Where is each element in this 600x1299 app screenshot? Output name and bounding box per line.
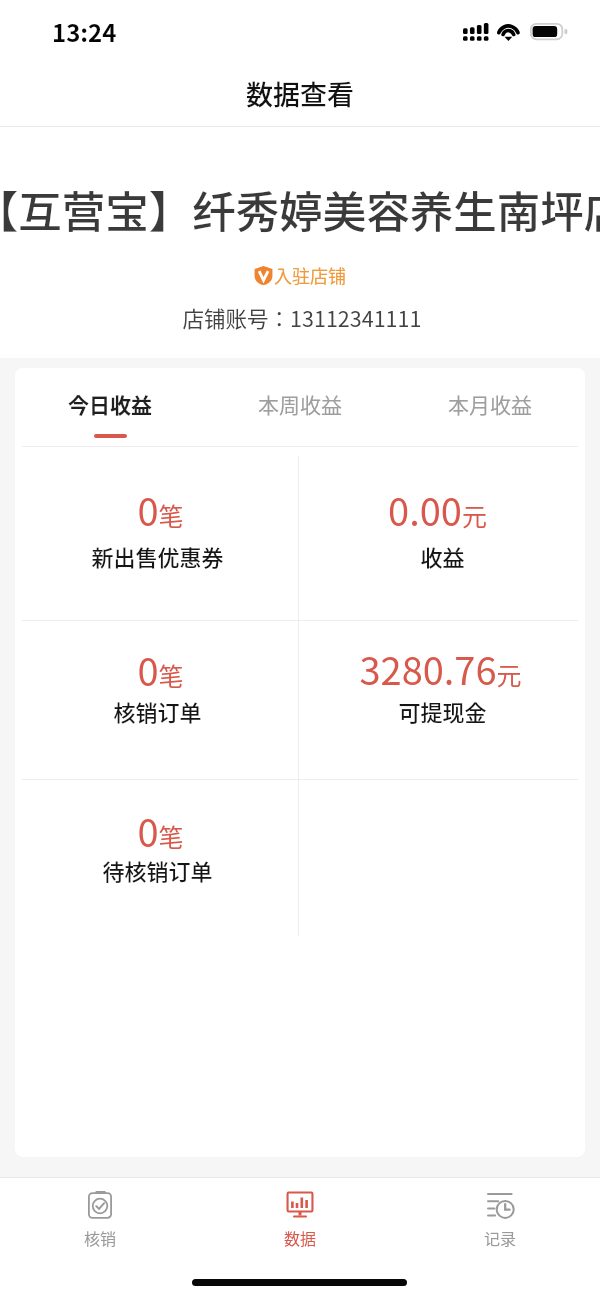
button[interactable]: 本周收益 [205, 368, 395, 446]
staticText: 本月收益 [395, 389, 585, 419]
button[interactable]: 入驻店铺 [0, 262, 600, 288]
button[interactable]: 本月收益 [395, 368, 585, 446]
button[interactable]: 今日收益 [15, 368, 205, 446]
staticText: 可提现金 [300, 695, 585, 727]
button[interactable]: 记录 [440, 1178, 560, 1258]
staticText: 0笔 [18, 803, 303, 858]
staticText: 新出售优惠券 [15, 540, 300, 572]
button[interactable]: 0笔 [15, 642, 300, 735]
staticText: 13:24 [52, 14, 117, 49]
staticText: 3280.76元 [298, 641, 583, 696]
staticText: 【互营宝】纤秀婷美容养生南坪店 [0, 178, 600, 241]
staticText: 记录 [440, 1226, 560, 1249]
staticText: 数据 [240, 1226, 360, 1249]
button[interactable]: 0笔 [15, 803, 300, 894]
other: 数据 [287, 1191, 313, 1219]
staticText: 核销 [40, 1226, 160, 1249]
other: 记录 [487, 1191, 513, 1219]
staticText: 0.00元 [295, 482, 580, 537]
staticText: 0笔 [18, 482, 303, 537]
button[interactable]: 0笔 [15, 482, 300, 580]
button[interactable]: 数据 [240, 1178, 360, 1258]
staticText: 今日收益 [15, 389, 205, 419]
button[interactable]: 3280.76元 [300, 641, 585, 735]
other: 核销 [87, 1191, 113, 1219]
staticText: 店铺账号：13112341111 [2, 302, 600, 333]
staticText: 0笔 [18, 642, 303, 697]
button[interactable]: 核销 [40, 1178, 160, 1258]
button[interactable]: 0.00元 [300, 482, 585, 580]
staticText: 待核销订单 [15, 854, 300, 886]
staticText: 收益 [300, 540, 585, 572]
staticText: 核销订单 [15, 695, 300, 727]
staticText: 入驻店铺 [274, 262, 346, 288]
staticText: 数据查看 [0, 74, 600, 113]
staticText: 本周收益 [205, 389, 395, 419]
